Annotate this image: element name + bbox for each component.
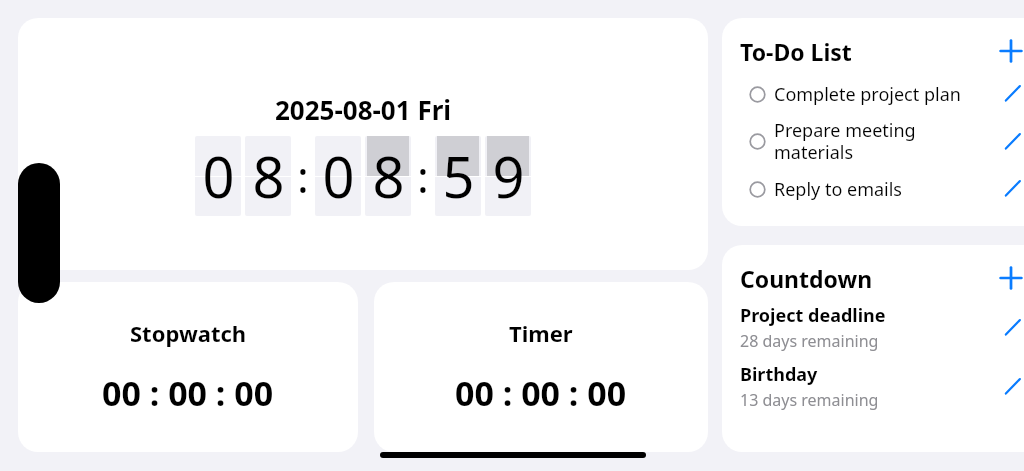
staticText: Complete project plan (774, 82, 996, 107)
button[interactable]: Reply to emails (740, 169, 1024, 209)
staticText: Project deadline (740, 303, 886, 328)
staticText: 2025-08-01 Fri (275, 92, 452, 127)
staticText: 00 : 00 : 00 (455, 370, 627, 416)
button[interactable]: Add countdown (994, 261, 1024, 295)
button[interactable]: Stopwatch (18, 282, 358, 452)
button[interactable]: Birthday (740, 362, 1024, 411)
staticText: 8 (252, 138, 285, 214)
button[interactable]: Edit Project deadline (996, 312, 1024, 344)
staticText: : (417, 146, 429, 206)
staticText: 0 (202, 138, 235, 214)
staticText: Prepare meeting materials (774, 118, 996, 165)
staticText: Birthday (740, 362, 818, 387)
staticText: To-Do List (740, 36, 852, 67)
staticText: 13 days remaining (740, 389, 879, 411)
staticText: Reply to emails (774, 177, 996, 202)
staticText: : (297, 146, 309, 206)
staticText: 9 (492, 138, 525, 214)
staticText: Countdown (740, 263, 873, 294)
button[interactable]: Edit Prepare meeting materials (996, 126, 1024, 158)
button[interactable]: Project deadline (740, 303, 1024, 352)
button[interactable]: Edit Reply to emails (996, 173, 1024, 205)
staticText: 5 (442, 138, 475, 214)
staticText: 28 days remaining (740, 330, 879, 352)
staticText: Timer (509, 318, 573, 348)
button[interactable]: Complete project plan (740, 74, 1024, 114)
staticText: 8 (372, 138, 405, 214)
button[interactable]: Edit Birthday (996, 371, 1024, 403)
button[interactable]: Prepare meeting materials (740, 114, 1024, 169)
button[interactable]: Edit Complete project plan (996, 78, 1024, 110)
staticText: 0 (322, 138, 355, 214)
button[interactable]: Timer (374, 282, 708, 452)
button[interactable]: Add to-do item (994, 34, 1024, 68)
staticText: 00 : 00 : 00 (102, 370, 274, 416)
button[interactable]: 2025-08-01 Fri (18, 18, 708, 270)
staticText: Stopwatch (130, 318, 247, 348)
